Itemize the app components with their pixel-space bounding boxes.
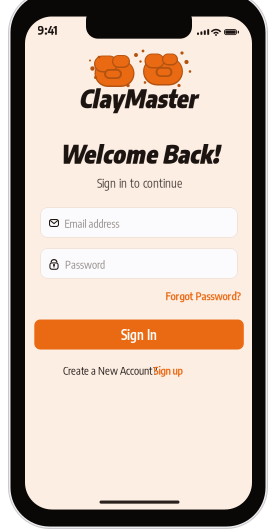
staticText: Sign up [153, 364, 182, 377]
staticText: Password [65, 258, 105, 271]
staticText: Welcome Back! [60, 139, 219, 169]
button[interactable]: Sign up [25, 16, 252, 509]
staticText: ClayMaster [78, 83, 196, 113]
staticText: Sign In [121, 326, 157, 343]
staticText: Forgot Password? [165, 289, 240, 303]
staticText: Sign in to continue [97, 175, 182, 190]
staticText: Create a New Account? [63, 364, 157, 377]
button[interactable]: Sign In [25, 16, 252, 509]
staticText: Email address [64, 217, 119, 230]
staticText: 9:41 [37, 22, 57, 37]
button[interactable]: Email address [25, 16, 252, 509]
button[interactable]: Password [25, 16, 252, 509]
button[interactable]: Forgot Password? [25, 16, 252, 509]
